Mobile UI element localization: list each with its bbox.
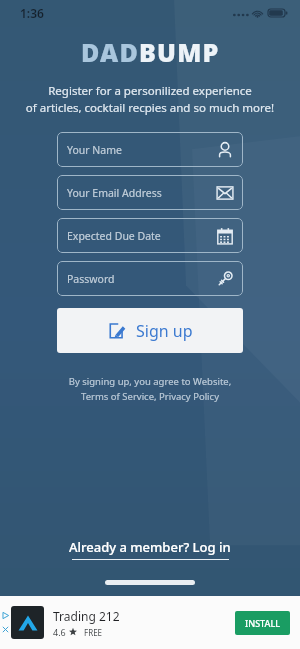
button[interactable]: Already a member? Log in (63, 538, 237, 560)
staticText: DAD (81, 35, 139, 69)
staticText: Trading 212 (53, 608, 120, 624)
staticText: 4.6 (53, 626, 66, 638)
button[interactable]: By signing up, you agree to Website, Ter… (0, 375, 300, 403)
staticText: Sign up (136, 320, 193, 342)
staticText: Your Name (67, 143, 216, 157)
staticText: 1:36 (20, 5, 44, 21)
button[interactable]: INSTALL (235, 611, 290, 635)
button[interactable]: Name (57, 132, 243, 167)
button[interactable]: Sign up (57, 308, 243, 353)
button[interactable]: Password (57, 261, 243, 296)
staticText: Password (67, 272, 216, 286)
staticText: Your Email Address (67, 186, 216, 200)
button[interactable]: Email (57, 175, 243, 210)
staticText: INSTALL (245, 617, 281, 629)
button[interactable]: Trading 212 (0, 596, 300, 649)
button[interactable]: Due date (57, 218, 243, 253)
staticText: BUMP (139, 35, 220, 69)
staticText: FREE (84, 627, 103, 638)
staticText: Already a member? Log in (69, 538, 231, 556)
staticText: Register for a personilized experience o… (10, 83, 290, 115)
staticText: Expected Due Date (67, 229, 216, 243)
